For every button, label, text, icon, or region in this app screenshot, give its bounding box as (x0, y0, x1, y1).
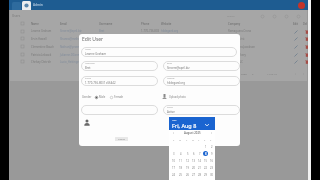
button[interactable]: Edit (293, 36, 298, 41)
button[interactable]: 19 (185, 165, 190, 170)
button[interactable]: Upload photo (162, 94, 186, 99)
button[interactable]: Username (81, 61, 158, 71)
staticText: Username (99, 22, 113, 26)
button[interactable] (21, 60, 24, 63)
button[interactable] (21, 53, 24, 56)
staticText: 25 (179, 173, 182, 177)
button[interactable]: 14 (197, 158, 202, 163)
button[interactable]: 11 (178, 158, 183, 163)
staticText: 17 (172, 166, 175, 170)
button[interactable] (9, 44, 309, 52)
button[interactable]: 16 (209, 158, 214, 163)
button[interactable]: 30 (209, 172, 214, 177)
staticText: Name (85, 48, 91, 51)
button[interactable]: Delete (304, 36, 309, 41)
button[interactable]: Email (60, 22, 97, 27)
button[interactable] (21, 45, 24, 48)
button[interactable]: Delete (304, 59, 309, 64)
button[interactable]: 15 (203, 158, 208, 163)
button[interactable]: 1 (203, 144, 208, 149)
button[interactable] (9, 51, 309, 59)
button[interactable]: Add (271, 13, 277, 19)
button[interactable]: Edit (293, 52, 298, 57)
button[interactable]: 10 (171, 158, 176, 163)
button[interactable]: 24 (171, 172, 176, 177)
staticText: Julianne.OConner@kory.org (60, 53, 97, 57)
button[interactable]: 22 (203, 165, 208, 170)
button[interactable] (81, 105, 158, 115)
button[interactable]: Status (163, 105, 240, 115)
button[interactable]: More (295, 13, 301, 19)
button[interactable]: Female (110, 95, 124, 99)
staticText: Email (167, 62, 173, 65)
button[interactable]: 29 (203, 172, 208, 177)
staticText: › (211, 131, 212, 135)
button[interactable]: 2 (209, 144, 214, 149)
staticText: Del (303, 22, 308, 26)
button[interactable]: 25 (178, 172, 183, 177)
staticText: S (210, 139, 212, 142)
button[interactable]: Username (99, 22, 139, 27)
button[interactable]: Edit (293, 44, 298, 49)
button[interactable]: Delete (304, 44, 309, 49)
button[interactable]: 26 (185, 172, 190, 177)
button[interactable]: 13 (191, 158, 196, 163)
staticText: Status (167, 106, 173, 109)
button[interactable]: Name (81, 47, 237, 57)
button[interactable]: Delete (304, 29, 309, 34)
button[interactable] (9, 36, 309, 44)
button[interactable]: 7 (197, 151, 202, 156)
staticText: Search (227, 14, 235, 17)
button[interactable]: Cancel (115, 137, 128, 141)
button[interactable]: Email (163, 61, 240, 71)
button[interactable]: Phone (81, 76, 158, 86)
button[interactable]: 23 (209, 165, 214, 170)
button[interactable] (21, 37, 24, 40)
button[interactable]: Company (228, 22, 261, 27)
button[interactable]: Close (298, 2, 305, 9)
button[interactable]: 8 (203, 151, 208, 156)
button[interactable] (22, 1, 31, 10)
button[interactable]: Male (95, 95, 106, 99)
button[interactable]: Edit (293, 22, 301, 27)
button[interactable]: 17 (171, 165, 176, 170)
button[interactable]: 4 (178, 151, 183, 156)
button[interactable]: Website (161, 22, 226, 27)
staticText: Lucio_Hettinger@annie.ca (60, 60, 97, 64)
button[interactable]: Previous month (171, 131, 175, 135)
button[interactable]: 28 (197, 172, 202, 177)
button[interactable] (21, 22, 24, 25)
button[interactable]: Del (303, 22, 311, 27)
button[interactable]: Phone (141, 22, 159, 27)
button[interactable]: 21 (197, 165, 202, 170)
button[interactable]: 3 (171, 151, 176, 156)
button[interactable]: Name (31, 22, 58, 27)
button[interactable]: Edit (293, 29, 298, 34)
button[interactable]: 9 (209, 151, 214, 156)
staticText: Chelsey Dietrich (31, 60, 58, 64)
button[interactable]: Website (163, 76, 240, 86)
button[interactable] (9, 28, 309, 36)
button[interactable]: Edit (293, 59, 298, 64)
button[interactable]: 27 (191, 172, 196, 177)
button[interactable]: Filter (259, 13, 265, 19)
staticText: hildegard.org (161, 29, 226, 33)
button[interactable]: Next month (209, 131, 213, 135)
button[interactable]: Download (283, 13, 289, 19)
staticText: W (192, 139, 195, 142)
button[interactable]: 20 (191, 165, 196, 170)
button[interactable]: 5 (185, 151, 190, 156)
button[interactable]: 12 (185, 158, 190, 163)
button[interactable]: Expand (205, 123, 209, 127)
button[interactable]: 18 (178, 165, 183, 170)
button[interactable]: 6 (191, 151, 196, 156)
button[interactable]: Delete (304, 52, 309, 57)
button[interactable] (21, 30, 24, 33)
button[interactable] (9, 59, 309, 67)
